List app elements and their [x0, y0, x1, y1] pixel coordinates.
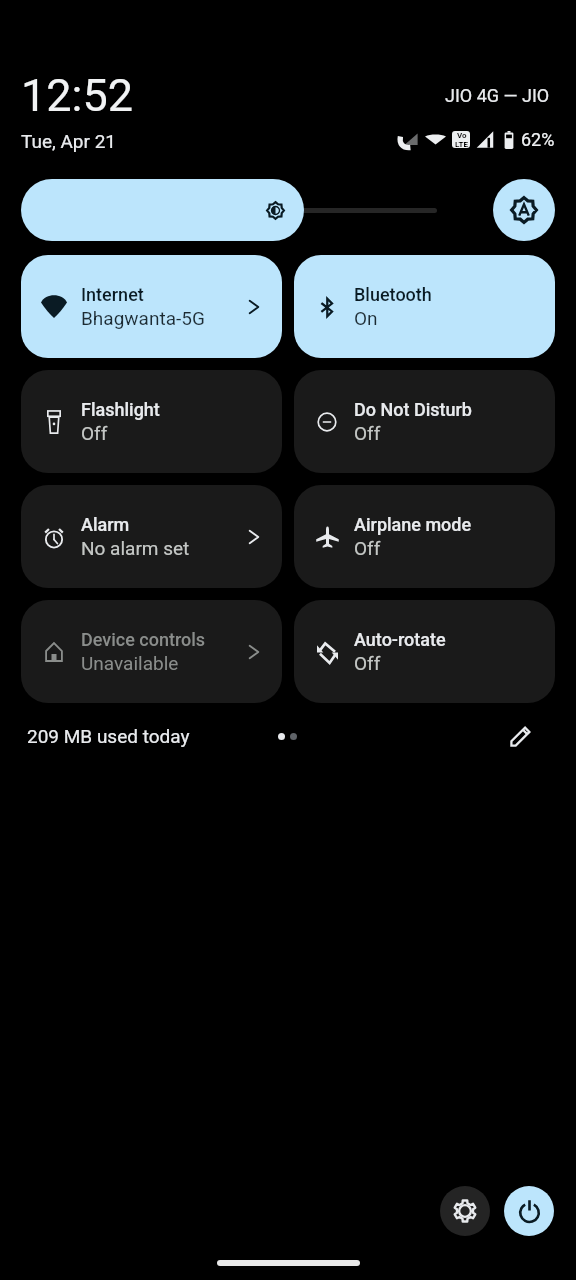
- staticText: LTE: [455, 140, 468, 148]
- staticText: Off: [81, 422, 108, 444]
- staticText: Bhagwanta-5G: [81, 307, 205, 329]
- staticText: Vo: [457, 131, 467, 140]
- staticText: 62%: [521, 129, 555, 150]
- button[interactable]: Auto-rotate: [294, 600, 555, 703]
- staticText: 12:52: [21, 69, 134, 122]
- staticText: Alarm: [81, 514, 130, 535]
- staticText: Unavailable: [81, 652, 179, 674]
- button[interactable]: Bluetooth: [294, 255, 555, 358]
- staticText: Flashlight: [81, 399, 160, 420]
- staticText: Off: [354, 537, 381, 559]
- button[interactable]: Device controls: [21, 600, 282, 703]
- staticText: Do Not Disturb: [354, 399, 472, 420]
- button[interactable]: Power: [504, 1186, 554, 1236]
- button[interactable]: Internet: [21, 255, 282, 358]
- button[interactable]: Do Not Disturb: [294, 370, 555, 473]
- staticText: No alarm set: [81, 537, 190, 559]
- staticText: 209 MB used today: [27, 725, 190, 747]
- staticText: Airplane mode: [354, 514, 472, 535]
- button[interactable]: Airplane mode: [294, 485, 555, 588]
- staticText: Internet: [81, 284, 144, 305]
- staticText: Off: [354, 652, 381, 674]
- button[interactable]: Settings: [440, 1186, 490, 1236]
- staticText: Device controls: [81, 629, 206, 650]
- staticText: Bluetooth: [354, 284, 432, 305]
- staticText: On: [354, 307, 378, 329]
- staticText: Off: [354, 422, 381, 444]
- button[interactable]: Brightness: [21, 179, 437, 241]
- button[interactable]: Auto brightness: [493, 179, 555, 241]
- button[interactable]: Edit tiles: [503, 718, 539, 754]
- staticText: Tue, Apr 21: [21, 130, 117, 152]
- button[interactable]: Flashlight: [21, 370, 282, 473]
- staticText: JIO 4G — JIO: [445, 85, 550, 106]
- staticText: Auto-rotate: [354, 629, 446, 650]
- button[interactable]: Alarm: [21, 485, 282, 588]
